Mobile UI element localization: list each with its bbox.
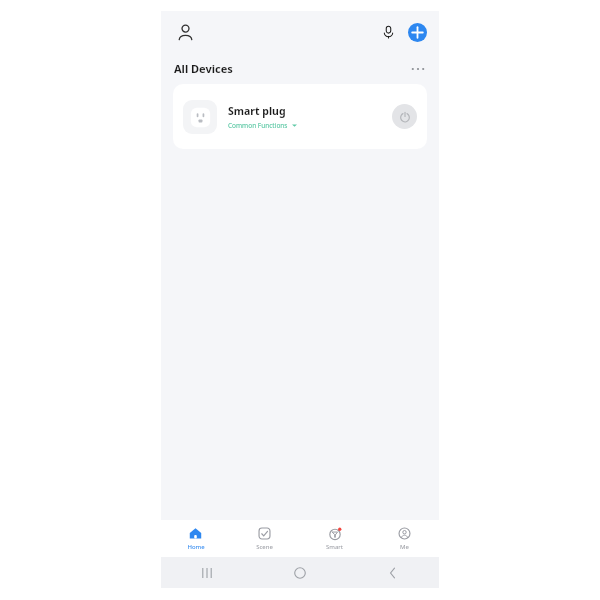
button[interactable]: More options (407, 58, 429, 80)
staticText: Smart (326, 543, 343, 551)
button[interactable]: Home (253, 557, 346, 588)
button[interactable]: Voice (376, 20, 400, 44)
staticText: Scene (256, 543, 273, 551)
button[interactable]: Power toggle (392, 104, 417, 129)
button[interactable]: Smart (299, 520, 369, 557)
staticText: Common Functions (228, 121, 288, 130)
button[interactable]: Scene (230, 520, 299, 557)
button[interactable]: Add device (408, 23, 427, 42)
staticText: All Devices (174, 61, 233, 76)
button[interactable]: Account (172, 19, 198, 45)
staticText: Home (187, 543, 205, 551)
button[interactable]: Me (369, 520, 439, 557)
button[interactable]: Smart plug (173, 84, 427, 149)
button[interactable]: Recent apps (161, 557, 253, 588)
button[interactable]: Back (346, 557, 439, 588)
button[interactable]: Home (161, 520, 230, 557)
staticText: Me (400, 543, 409, 551)
staticText: Smart plug (228, 104, 286, 118)
